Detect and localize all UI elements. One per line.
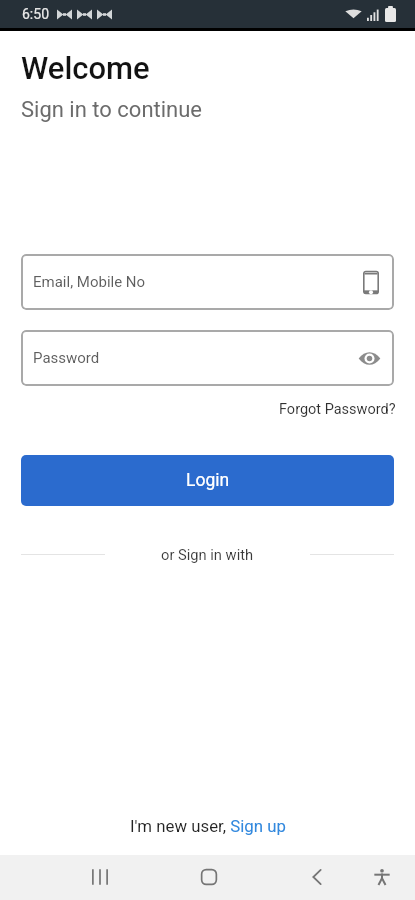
button[interactable]: Password (21, 330, 394, 386)
button[interactable]: Email, Mobile No (21, 254, 394, 310)
staticText: or Sign in with (161, 546, 254, 563)
staticText: Sign in to continue (21, 97, 203, 123)
staticText: Login (186, 470, 230, 491)
staticText: I'm new user, Sign up (130, 816, 286, 836)
button[interactable]: Login (21, 455, 394, 506)
staticText: Password (33, 349, 100, 367)
other: Show password (358, 349, 381, 368)
staticText: Email, Mobile No (33, 273, 146, 291)
other: Mobile number (361, 271, 381, 294)
button[interactable]: Home (187, 855, 231, 899)
staticText: Forgot Password? (279, 401, 396, 418)
button[interactable]: Back (295, 855, 339, 899)
staticText: 6:50 (22, 6, 49, 22)
button[interactable]: Recents (78, 855, 122, 899)
button[interactable]: Forgot Password? (279, 400, 415, 419)
staticText: Welcome (21, 50, 150, 86)
button[interactable]: Accessibility (360, 855, 404, 899)
button[interactable]: I'm new user, Sign up (126, 812, 290, 840)
